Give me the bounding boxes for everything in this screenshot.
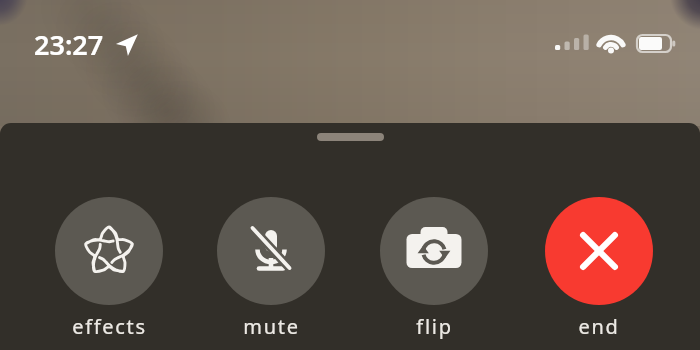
button[interactable]: flip bbox=[380, 197, 488, 340]
staticText: end bbox=[578, 313, 620, 340]
staticText: flip bbox=[416, 313, 453, 340]
button[interactable]: end bbox=[545, 197, 653, 340]
staticText: mute bbox=[243, 313, 300, 340]
staticText: 23:27 bbox=[34, 26, 104, 63]
button[interactable]: effects bbox=[55, 197, 163, 340]
staticText: effects bbox=[72, 313, 147, 340]
button[interactable]: mute bbox=[217, 197, 325, 340]
